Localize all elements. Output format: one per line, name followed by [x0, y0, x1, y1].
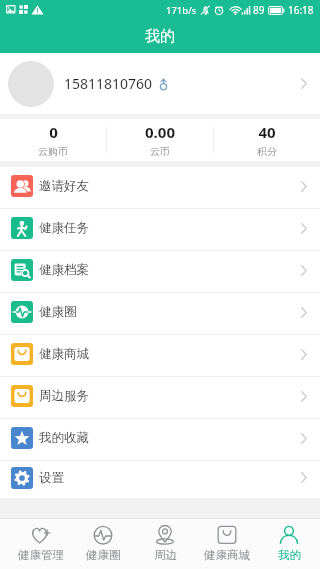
staticText: 云购币	[38, 145, 68, 158]
staticText: 云币	[150, 145, 170, 158]
staticText: 周边	[154, 548, 177, 562]
button[interactable]: 周边	[134, 519, 196, 569]
staticText: 171b/s	[166, 4, 197, 17]
staticText: 我的	[145, 27, 175, 46]
staticText: 16:18	[288, 3, 314, 17]
staticText: 设置	[39, 470, 64, 486]
staticText: 我的收藏	[39, 430, 89, 446]
button[interactable]: 健康圈	[72, 519, 134, 569]
button[interactable]: 邀请好友	[0, 167, 320, 209]
staticText: 89	[253, 3, 265, 17]
staticText: 健康圈	[86, 548, 121, 562]
staticText: 40	[258, 122, 276, 142]
staticText: 0	[49, 122, 58, 142]
button[interactable]: 我的	[258, 519, 320, 569]
button[interactable]: 0.00	[107, 119, 213, 161]
staticText: 积分	[257, 145, 277, 158]
button[interactable]: 健康档案	[0, 251, 320, 293]
staticText: 健康商城	[39, 346, 89, 362]
staticText: 邀请好友	[39, 178, 89, 194]
staticText: 健康任务	[39, 220, 89, 236]
staticText: 健康圈	[39, 304, 77, 320]
button[interactable]: 周边服务	[0, 377, 320, 419]
button[interactable]: 我的收藏	[0, 419, 320, 461]
button[interactable]: 健康任务	[0, 209, 320, 251]
button[interactable]: 健康圈	[0, 293, 320, 335]
staticText: 周边服务	[39, 388, 89, 404]
staticText: 15811810760	[64, 74, 153, 93]
staticText: 0.00	[145, 122, 175, 142]
staticText: 我的	[278, 548, 301, 562]
button[interactable]: 设置	[0, 461, 320, 498]
staticText: 健康管理	[18, 548, 64, 562]
button[interactable]: 15811810760	[0, 53, 320, 114]
button[interactable]: 健康商城	[0, 335, 320, 377]
button[interactable]: 健康管理	[9, 519, 72, 569]
button[interactable]: 健康商城	[196, 519, 258, 569]
staticText: 健康商城	[204, 548, 250, 562]
button[interactable]: 40	[214, 119, 320, 161]
staticText: 健康档案	[39, 262, 89, 278]
button[interactable]: 0	[0, 119, 106, 161]
